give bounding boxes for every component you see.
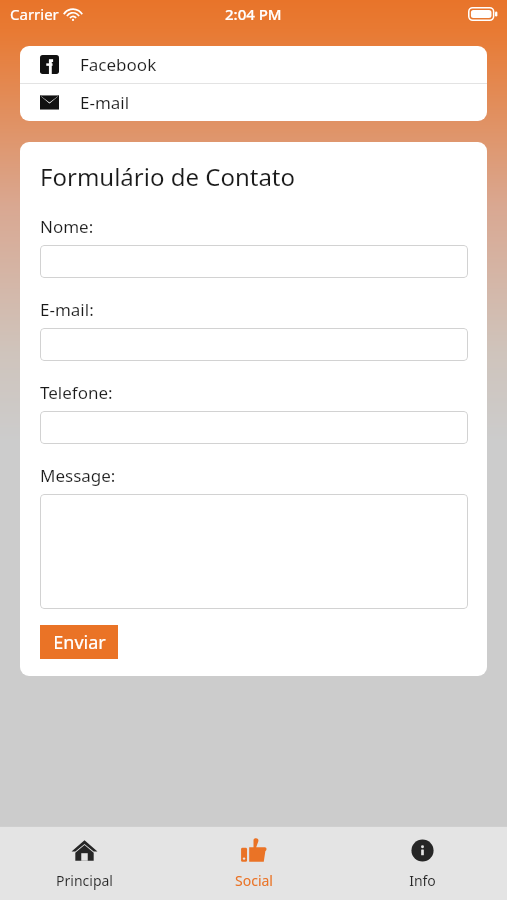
staticText: Info xyxy=(409,871,436,890)
staticText: 2:04 PM xyxy=(225,4,282,24)
staticText: E-mail: xyxy=(40,298,94,321)
button[interactable] xyxy=(40,494,468,609)
staticText: Social xyxy=(235,871,273,890)
staticText: Formulário de Contato xyxy=(40,160,296,193)
button[interactable]: Social xyxy=(169,827,338,900)
other: Info xyxy=(409,837,436,864)
other: Principal xyxy=(71,837,98,864)
staticText: Principal xyxy=(56,871,113,890)
button[interactable]: Info xyxy=(338,827,507,900)
staticText: Facebook xyxy=(80,53,157,76)
button[interactable]: Facebook xyxy=(20,46,487,83)
button[interactable] xyxy=(40,411,468,444)
staticText: E-mail xyxy=(80,91,130,114)
staticText: Carrier xyxy=(10,4,59,24)
staticText: Enviar xyxy=(53,630,106,655)
button[interactable]: Enviar xyxy=(40,625,118,659)
button[interactable] xyxy=(40,328,468,361)
button[interactable]: Principal xyxy=(0,827,169,900)
other: Social xyxy=(240,837,267,864)
button[interactable]: E-mail xyxy=(20,84,487,121)
button[interactable] xyxy=(40,245,468,278)
staticText: Nome: xyxy=(40,215,94,238)
staticText: Telefone: xyxy=(40,381,113,404)
staticText: Message: xyxy=(40,464,116,487)
